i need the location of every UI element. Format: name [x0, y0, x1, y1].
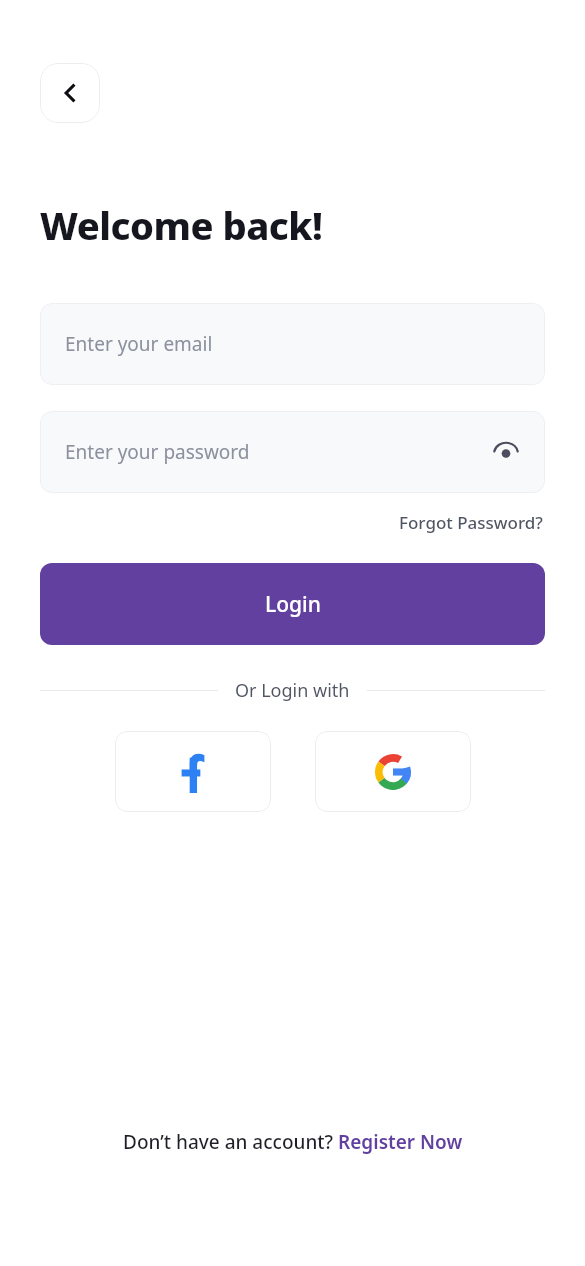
staticText: Enter your password — [65, 439, 250, 465]
button[interactable]: Back — [40, 63, 100, 123]
staticText: Enter your email — [65, 331, 213, 357]
button[interactable]: Sign in with Google — [315, 731, 471, 812]
button[interactable]: Don’t have an account? Register Now — [119, 1126, 467, 1158]
staticText: Or Login with — [235, 678, 350, 703]
staticText: Welcome back! — [40, 199, 323, 251]
staticText: Don’t have an account? Register Now — [123, 1129, 463, 1155]
staticText: Forgot Password? — [399, 511, 543, 534]
button[interactable]: Login — [40, 563, 545, 645]
button[interactable]: Enter your email — [40, 303, 545, 385]
staticText: Login — [265, 590, 321, 619]
button[interactable]: Enter your password — [40, 411, 545, 493]
button[interactable]: Forgot Password? — [397, 509, 545, 536]
button[interactable]: Sign in with Facebook — [115, 731, 271, 812]
button[interactable]: Show password — [489, 435, 523, 469]
